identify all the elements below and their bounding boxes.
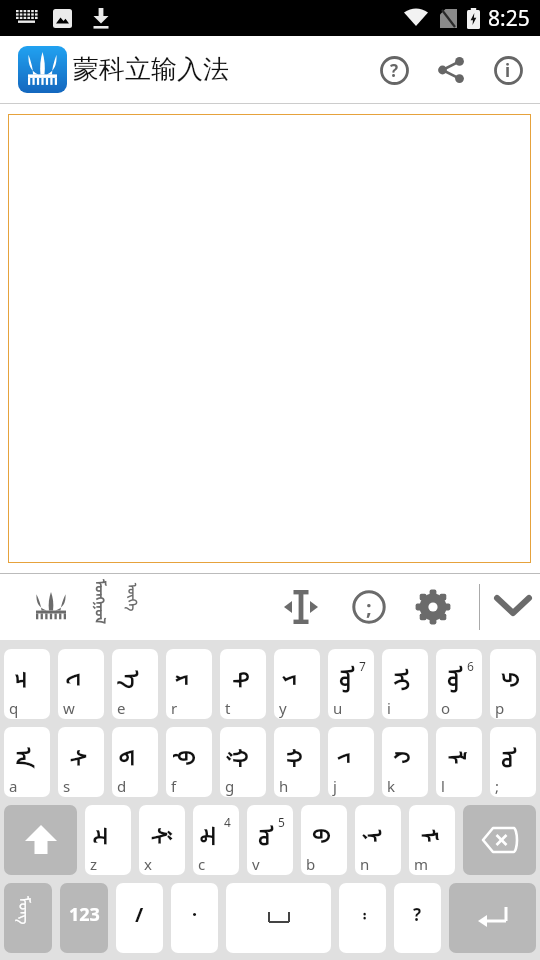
button[interactable]: ᠶ [274, 649, 320, 719]
button[interactable] [449, 883, 536, 953]
staticText: ᠲ [224, 672, 263, 689]
staticText: y [279, 698, 287, 718]
button[interactable] [428, 47, 474, 93]
button[interactable]: ᠫ [490, 649, 536, 719]
staticText: v [252, 854, 260, 874]
staticText: ᠹ [170, 751, 209, 766]
button[interactable]: ᠤ [490, 727, 536, 797]
button[interactable]: ᠳ [112, 727, 158, 797]
staticText: ᠸ [61, 673, 100, 687]
staticText: ᠷ [170, 675, 209, 686]
staticText: · [192, 902, 198, 927]
button[interactable]: ᠷ [166, 649, 212, 719]
staticText: ᠪ [305, 829, 344, 844]
staticText: ᠦ [331, 666, 370, 694]
staticText: b [306, 854, 316, 874]
button[interactable]: ᠥ [436, 649, 482, 719]
staticText: o [441, 698, 451, 718]
staticText: p [495, 698, 505, 718]
button[interactable] [4, 805, 77, 875]
staticText: w [63, 698, 75, 718]
button[interactable] [18, 46, 67, 93]
staticText: ᠢ [385, 669, 424, 691]
button[interactable]: 123 [60, 883, 108, 953]
button[interactable]: ᠪ [301, 805, 347, 875]
button[interactable]: ᠄ [339, 883, 386, 953]
staticText: ? [413, 903, 422, 926]
button[interactable]: ᠱ [139, 805, 185, 875]
button[interactable]: ᠦ [328, 649, 374, 719]
button[interactable]: ᠭ [220, 727, 266, 797]
staticText: t [225, 698, 231, 718]
button[interactable]: ᠸ [58, 649, 104, 719]
staticText: s [63, 776, 71, 796]
staticText: ᠮᠤᠩ [15, 896, 41, 940]
button[interactable]: ; [346, 584, 392, 630]
button[interactable] [278, 584, 324, 630]
button[interactable]: ᠽ [85, 805, 131, 875]
button[interactable] [29, 585, 73, 629]
staticText: ᠽ [88, 827, 127, 845]
staticText: 6 [467, 658, 474, 674]
staticText: ? [390, 59, 399, 82]
staticText: ᠠ [8, 748, 47, 769]
staticText: l [441, 776, 445, 796]
staticText: ᠵ [332, 753, 371, 764]
button[interactable] [463, 805, 536, 875]
button[interactable]: ᠠ [4, 727, 50, 797]
staticText: ᠥ [439, 666, 478, 694]
staticText: ᠶ [278, 675, 317, 686]
staticText: ᠴ [8, 672, 47, 689]
staticText: ᠦᠭᠡ [123, 583, 144, 613]
button[interactable]: ᠯ [436, 727, 482, 797]
button[interactable]: i [484, 46, 532, 94]
button[interactable]: ᠵ [328, 727, 374, 797]
staticText: ᠄ [359, 900, 366, 928]
staticText: i [387, 698, 391, 718]
button[interactable]: ᠮᠤᠩ [4, 883, 52, 953]
button[interactable]: ᠲ [220, 649, 266, 719]
staticText: x [144, 854, 152, 874]
staticText: 4 [224, 814, 231, 830]
button[interactable]: ᠢ [382, 649, 428, 719]
button[interactable] [410, 584, 456, 630]
staticText: ᠺ [386, 752, 425, 765]
staticText: r [171, 698, 178, 718]
button[interactable]: ᠺ [382, 727, 428, 797]
button[interactable]: ᠣ [247, 805, 293, 875]
staticText: 蒙科立输入法 [73, 53, 229, 86]
button[interactable]: · [171, 883, 218, 953]
staticText: ; [495, 776, 500, 796]
button[interactable]: / [116, 883, 163, 953]
staticText: h [279, 776, 289, 796]
button[interactable]: ᠰ [58, 727, 104, 797]
button[interactable]: ᠼ [193, 805, 239, 875]
staticText: i [505, 59, 511, 82]
staticText: ᠮ [412, 829, 451, 843]
staticText: m [414, 854, 429, 874]
button[interactable]: ᠡ [112, 649, 158, 719]
staticText: ᠼ [196, 826, 235, 846]
staticText: z [90, 854, 98, 874]
staticText: ᠡ [116, 671, 155, 690]
staticText: ᠨ [358, 829, 397, 843]
staticText: c [198, 854, 206, 874]
staticText: e [117, 698, 126, 718]
staticText: ᠤ [494, 748, 533, 769]
button[interactable]: ᠨ [355, 805, 401, 875]
button[interactable]: ? [370, 46, 418, 94]
button[interactable]: ᠮᠣᠩᠭᠣᠯ [89, 579, 115, 635]
button[interactable] [489, 583, 537, 631]
button[interactable]: ᠹ [166, 727, 212, 797]
staticText: ᠫ [494, 673, 533, 688]
button[interactable] [226, 883, 331, 953]
staticText: k [387, 776, 396, 796]
button[interactable]: ? [394, 883, 441, 953]
button[interactable]: ᠬ [274, 727, 320, 797]
staticText: 5 [278, 814, 285, 830]
button[interactable]: ᠴ [4, 649, 50, 719]
button[interactable]: ᠮ [409, 805, 455, 875]
staticText: ᠱ [143, 828, 182, 845]
staticText: ᠣ [251, 826, 290, 847]
button[interactable]: ᠦᠭᠡ [123, 579, 145, 635]
